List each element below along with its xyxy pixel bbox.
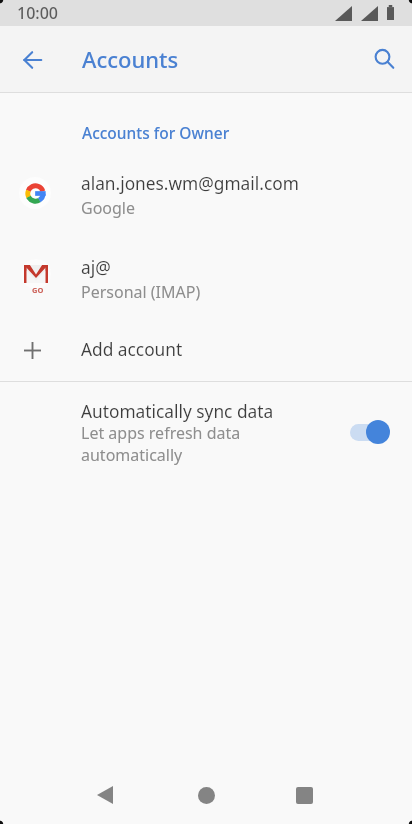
staticText: Let apps refresh data automatically (81, 422, 241, 466)
staticText: alan.jones.wm@gmail.com (81, 172, 299, 196)
button[interactable]: Back (9, 36, 57, 84)
staticText: Google (81, 197, 136, 219)
button[interactable]: Add account (0, 322, 412, 380)
staticText: Accounts for Owner (82, 122, 230, 143)
staticText: 10:00 (17, 2, 58, 24)
button[interactable]: Recents (276, 767, 332, 823)
button[interactable]: Back (77, 767, 133, 823)
staticText: Add account (81, 338, 183, 362)
button[interactable]: GO (0, 242, 412, 318)
staticText: GO (32, 285, 44, 295)
staticText: Personal (IMAP) (81, 281, 201, 303)
staticText: aj@ (81, 256, 111, 280)
staticText: Automatically sync data (81, 400, 274, 424)
staticText: Accounts (82, 44, 179, 74)
button[interactable]: Home (178, 767, 234, 823)
button[interactable]: Automatically sync data (0, 382, 412, 474)
button[interactable]: Search (360, 35, 408, 83)
button[interactable]: alan.jones.wm@gmail.com (0, 158, 412, 234)
